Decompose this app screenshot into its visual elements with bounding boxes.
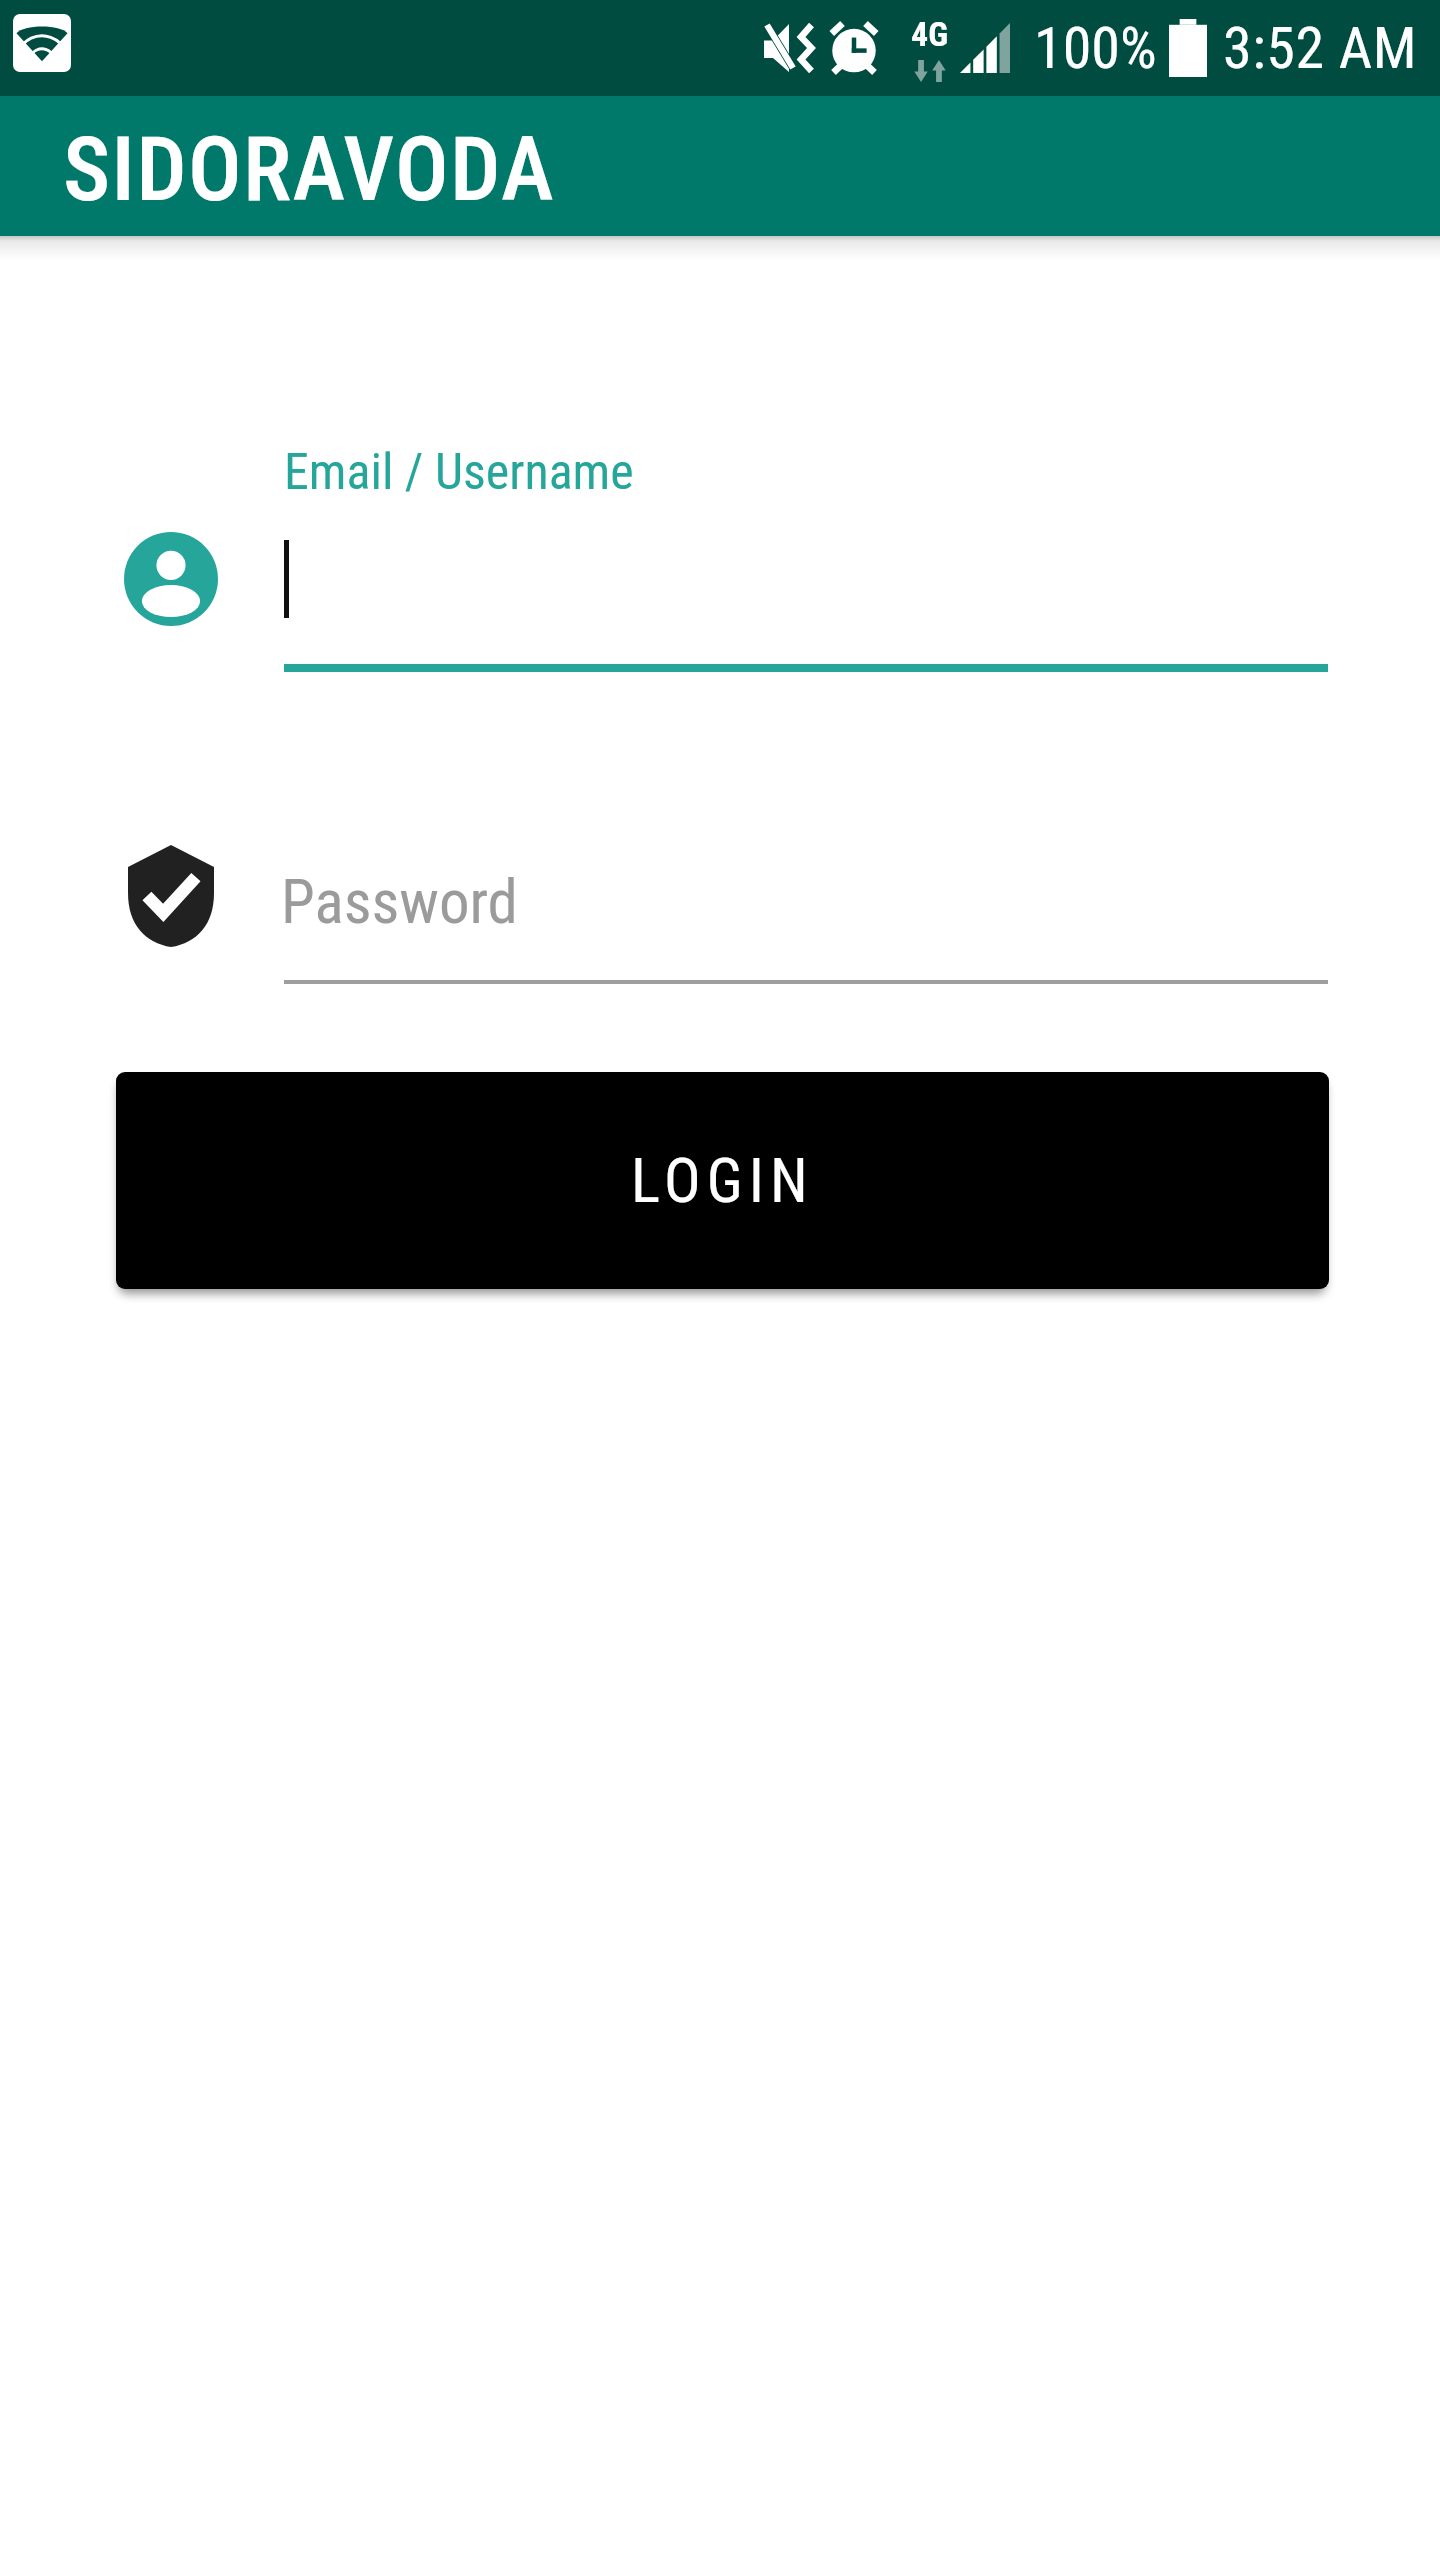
staticText: Email / Username [284,443,634,502]
other: Wi-Fi [13,14,71,72]
staticText: SIDORAVODA [63,117,555,221]
other: 4G network [909,14,951,82]
staticText: 3:52 AM [1223,14,1418,82]
other: Alarm [829,22,879,74]
other: Signal strength [960,23,1010,73]
staticText: LOGIN [631,1145,814,1216]
staticText: 100% [1034,14,1157,82]
button[interactable]: LOGIN [116,1072,1329,1289]
staticText: 4G [911,14,949,54]
other: Account [124,532,218,626]
other: Secure [128,845,214,947]
other: Silent mode [763,23,813,73]
staticText: Password [281,866,518,937]
